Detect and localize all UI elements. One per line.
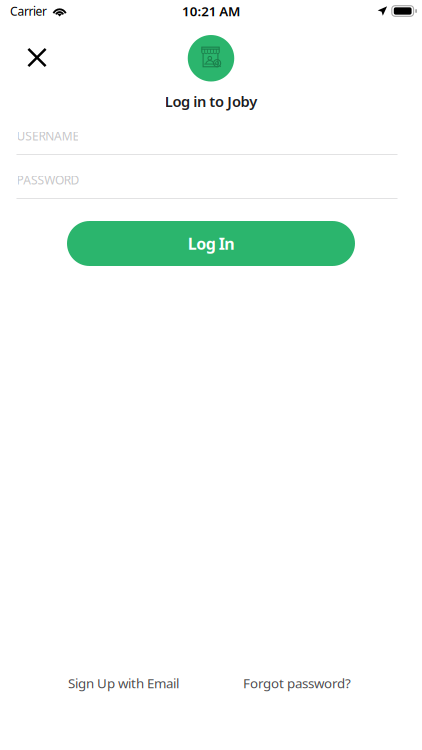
button[interactable]: Sign Up with Email (68, 674, 179, 692)
staticText: Forgot password? (243, 674, 351, 692)
staticText: Sign Up with Email (68, 674, 179, 692)
staticText: PASSWORD (16, 172, 79, 188)
staticText: 10:21 AM (182, 2, 240, 20)
staticText: USERNAME (16, 128, 79, 144)
staticText: Carrier (10, 3, 47, 19)
staticText: Log In (188, 233, 234, 254)
button[interactable]: Log In (67, 221, 355, 266)
button[interactable]: Forgot password? (243, 674, 351, 692)
staticText: Log in to Joby (165, 91, 257, 111)
button[interactable]: Close (15, 35, 59, 79)
